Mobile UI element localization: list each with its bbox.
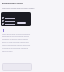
button[interactable] [2,20,18,22]
button[interactable] [2,63,32,71]
staticText: Background Mode [2,2,23,5]
staticText: Keep work running when the app is hidden… [2,7,35,9]
button[interactable] [2,17,18,19]
staticText: Lorem ipsum dolor sit amet consectetur a… [2,33,31,53]
button[interactable]: Continue [17,22,26,24]
button[interactable] [2,23,18,25]
